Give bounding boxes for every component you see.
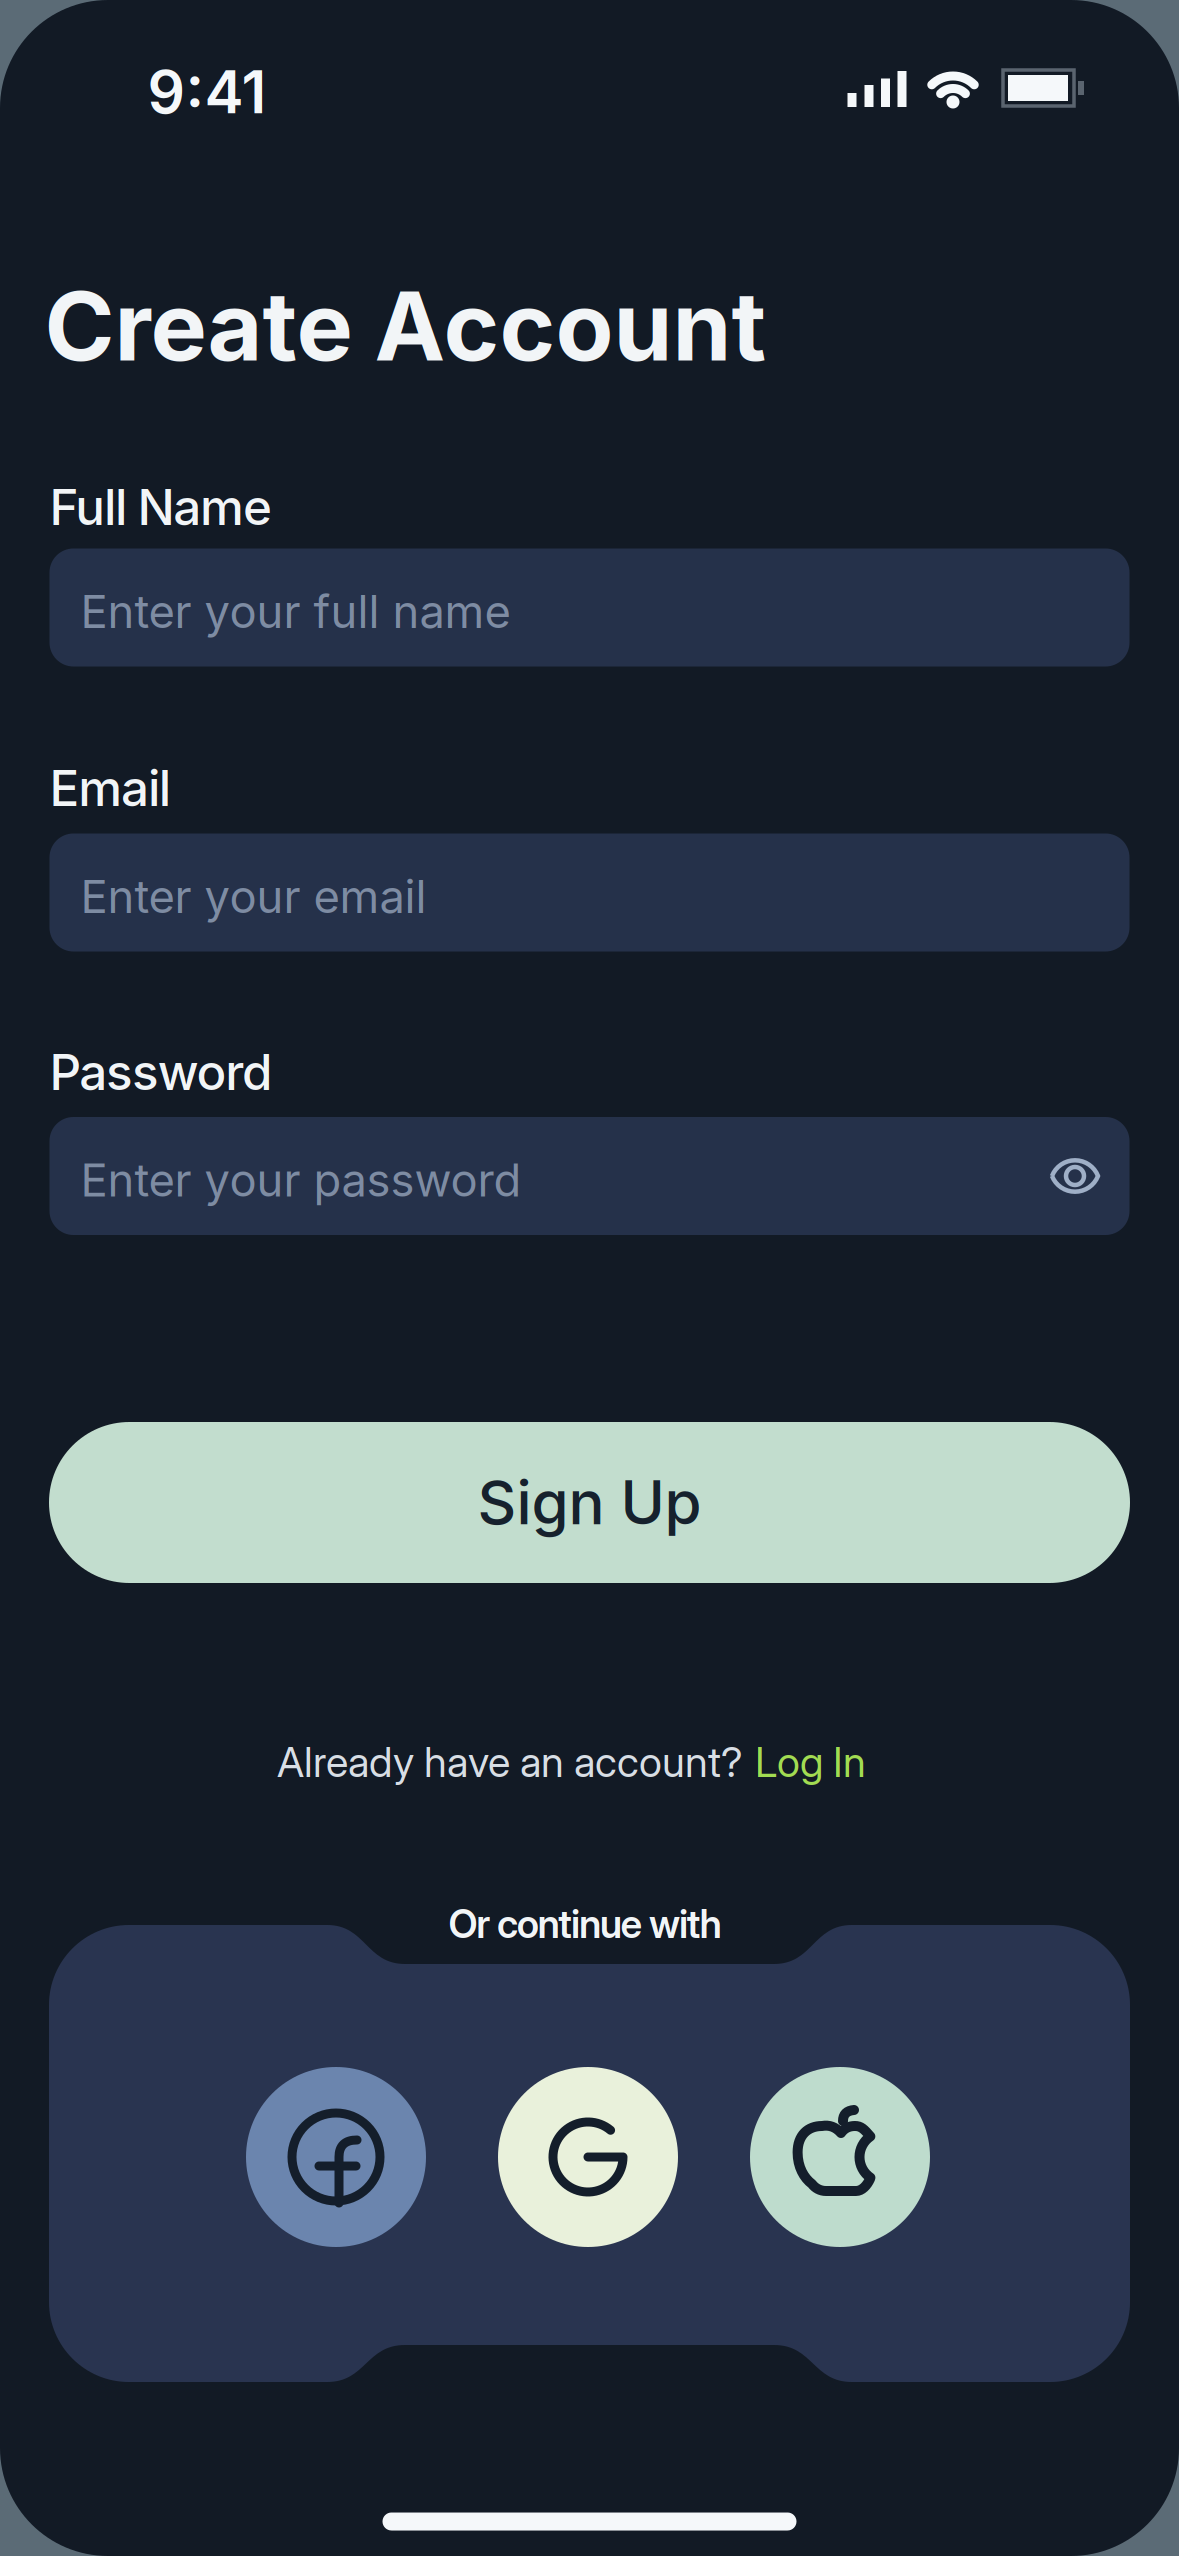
- button[interactable]: [498, 2067, 678, 2247]
- staticText: Enter your full name: [80, 585, 510, 638]
- button[interactable]: Enter your email: [49, 833, 1129, 951]
- staticText: Or continue with: [448, 1901, 721, 1947]
- staticText: Enter your email: [80, 870, 426, 923]
- button[interactable]: [750, 2067, 930, 2247]
- staticText: Create Account: [44, 270, 766, 382]
- staticText: Sign Up: [477, 1467, 701, 1538]
- staticText: Enter your password: [80, 1153, 521, 1207]
- button[interactable]: [246, 2067, 426, 2247]
- staticText: Email: [49, 759, 171, 817]
- button[interactable]: [1045, 1146, 1105, 1206]
- button[interactable]: Enter your full name: [49, 548, 1129, 666]
- staticText: Log In: [755, 1738, 866, 1786]
- button[interactable]: Sign Up: [49, 1422, 1130, 1583]
- button[interactable]: Enter your password: [49, 1117, 1129, 1235]
- staticText: Already have an account?: [277, 1738, 743, 1786]
- button[interactable]: Log In: [755, 1738, 866, 1786]
- staticText: Full Name: [49, 478, 272, 536]
- staticText: 9:41: [147, 57, 266, 127]
- staticText: Password: [49, 1043, 272, 1101]
